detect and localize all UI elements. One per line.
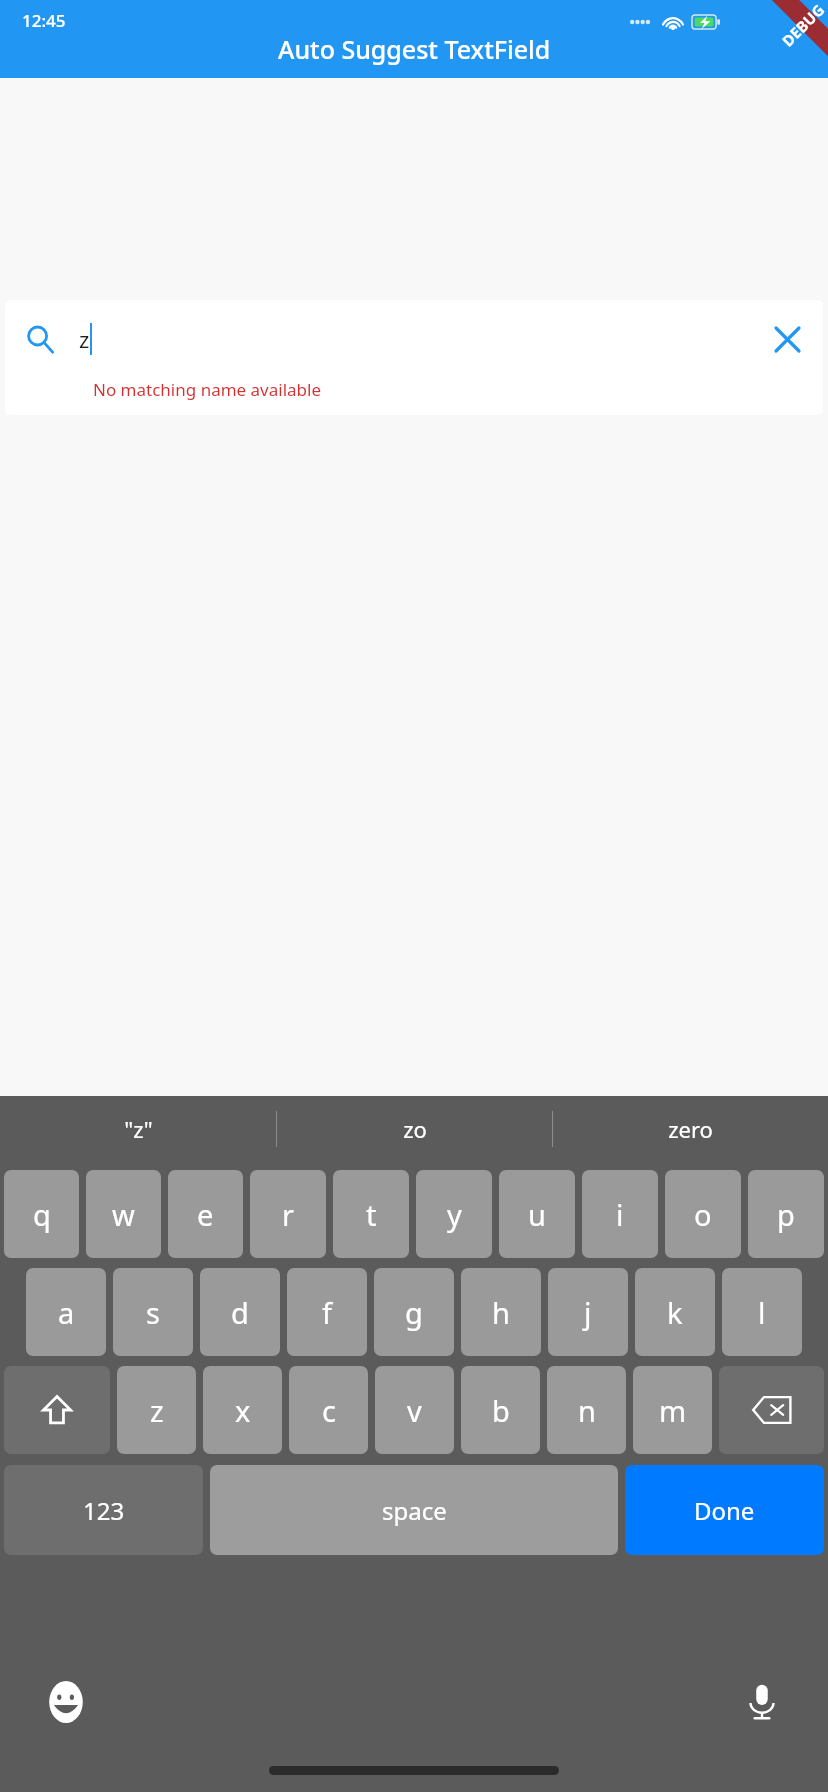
button[interactable]: p	[748, 1170, 824, 1258]
staticText: b	[492, 1391, 510, 1430]
button[interactable]: h	[461, 1268, 541, 1356]
staticText: t	[366, 1195, 377, 1234]
staticText: zo	[403, 1114, 427, 1144]
staticText: 12:45	[22, 9, 66, 32]
button[interactable]: z	[117, 1366, 196, 1454]
button[interactable]: n	[547, 1366, 626, 1454]
button[interactable]: Search	[5, 300, 823, 415]
staticText: Done	[694, 1494, 755, 1527]
staticText: w	[112, 1195, 135, 1234]
button[interactable]: Done	[625, 1465, 824, 1555]
staticText: "z"	[124, 1114, 153, 1144]
staticText: p	[777, 1195, 795, 1234]
staticText: k	[667, 1293, 683, 1332]
button[interactable]: i	[582, 1170, 658, 1258]
button[interactable]: zero	[553, 1096, 828, 1162]
staticText: x	[235, 1391, 251, 1430]
staticText: v	[407, 1391, 422, 1430]
button[interactable]: Voice input	[736, 1676, 788, 1728]
button[interactable]: a	[26, 1268, 106, 1356]
staticText: e	[197, 1195, 214, 1234]
staticText: z	[150, 1391, 164, 1430]
button[interactable]: u	[499, 1170, 575, 1258]
button[interactable]: "z"	[0, 1096, 276, 1162]
button[interactable]: q	[4, 1170, 79, 1258]
button[interactable]: r	[250, 1170, 326, 1258]
staticText: Auto Suggest TextField	[278, 32, 551, 66]
staticText: q	[33, 1195, 51, 1234]
button[interactable]: m	[633, 1366, 712, 1454]
button[interactable]: g	[374, 1268, 454, 1356]
staticText: d	[231, 1293, 249, 1332]
staticText: z	[79, 324, 90, 354]
staticText: o	[694, 1195, 712, 1234]
staticText: j	[584, 1293, 592, 1332]
button[interactable]: j	[548, 1268, 628, 1356]
staticText: 123	[83, 1494, 125, 1527]
button[interactable]: o	[665, 1170, 741, 1258]
staticText: No matching name available	[93, 378, 322, 401]
staticText: c	[322, 1391, 336, 1430]
staticText: n	[578, 1391, 596, 1430]
button[interactable]: Clear	[769, 321, 805, 357]
staticText: zero	[668, 1114, 713, 1144]
staticText: l	[758, 1293, 766, 1332]
button[interactable]: Backspace	[719, 1366, 824, 1454]
staticText: h	[492, 1293, 510, 1332]
button[interactable]: c	[289, 1366, 368, 1454]
staticText: space	[382, 1494, 447, 1527]
button[interactable]: w	[86, 1170, 161, 1258]
button[interactable]: v	[375, 1366, 454, 1454]
staticText: r	[282, 1195, 294, 1234]
button[interactable]: y	[416, 1170, 492, 1258]
button[interactable]: t	[333, 1170, 409, 1258]
button[interactable]: k	[635, 1268, 715, 1356]
button[interactable]: space	[210, 1465, 618, 1555]
staticText: y	[447, 1195, 462, 1234]
staticText: m	[659, 1391, 687, 1430]
button[interactable]: d	[200, 1268, 280, 1356]
button[interactable]: Emoji	[40, 1676, 92, 1728]
button[interactable]: e	[168, 1170, 243, 1258]
button[interactable]: Shift	[4, 1366, 110, 1454]
staticText: DEBUG	[777, 0, 828, 50]
staticText: u	[528, 1195, 546, 1234]
button[interactable]: 123	[4, 1465, 203, 1555]
button[interactable]: b	[461, 1366, 540, 1454]
button[interactable]: s	[113, 1268, 193, 1356]
staticText: i	[616, 1195, 624, 1234]
button[interactable]: f	[287, 1268, 367, 1356]
staticText: f	[322, 1293, 332, 1332]
other: Search	[25, 324, 55, 354]
button[interactable]: l	[722, 1268, 802, 1356]
staticText: s	[146, 1293, 160, 1332]
button[interactable]: zo	[277, 1096, 552, 1162]
button[interactable]: x	[203, 1366, 282, 1454]
staticText: g	[405, 1293, 423, 1332]
staticText: a	[58, 1293, 75, 1332]
